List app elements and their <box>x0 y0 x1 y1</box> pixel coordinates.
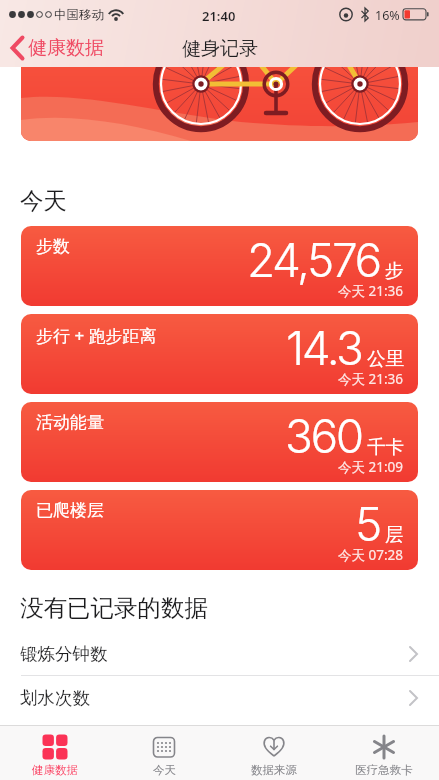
staticText: 今天 21:36 <box>338 282 404 300</box>
staticText: 14.3 <box>286 320 362 376</box>
button[interactable]: 数据来源 <box>219 726 329 780</box>
staticText: 24,576 <box>247 232 380 288</box>
staticText: 没有已记录的数据 <box>20 593 208 623</box>
staticText: 步行 + 跑步距离 <box>36 324 157 347</box>
button[interactable]: 活动能量 <box>21 402 418 482</box>
staticText: 16% <box>375 7 400 24</box>
staticText: 步数 <box>36 236 70 257</box>
staticText: 21:40 <box>202 7 236 25</box>
staticText: 步 <box>385 259 404 282</box>
button[interactable] <box>21 67 418 141</box>
staticText: 今天 07:28 <box>338 546 404 564</box>
staticText: 5 <box>355 496 380 552</box>
button[interactable]: 锻炼分钟数 <box>0 633 439 675</box>
staticText: 360 <box>285 408 362 464</box>
staticText: 医疗急救卡 <box>355 763 413 777</box>
button[interactable]: 健康数据 <box>0 726 109 780</box>
staticText: 中国移动 <box>54 7 104 23</box>
staticText: 锻炼分钟数 <box>20 643 108 665</box>
staticText: 数据来源 <box>251 763 297 777</box>
button[interactable]: 步行 + 跑步距离 <box>21 314 418 394</box>
button[interactable]: 已爬楼层 <box>21 490 418 570</box>
staticText: 今天 21:36 <box>338 370 404 388</box>
staticText: 今天 21:09 <box>338 458 404 476</box>
button[interactable]: 划水次数 <box>0 677 439 719</box>
staticText: 公里 <box>367 347 404 370</box>
button[interactable]: 今天 <box>109 726 219 780</box>
staticText: 健康数据 <box>32 763 78 777</box>
staticText: 千卡 <box>367 435 404 458</box>
staticText: 今天 <box>153 763 176 777</box>
button[interactable]: 健康数据 <box>8 32 118 64</box>
staticText: 健康数据 <box>28 36 104 60</box>
staticText: 今天 <box>20 186 67 216</box>
button[interactable]: 医疗急救卡 <box>329 726 439 780</box>
staticText: 活动能量 <box>36 412 104 433</box>
staticText: 健身记录 <box>182 37 258 61</box>
staticText: 划水次数 <box>20 687 90 709</box>
staticText: 层 <box>385 523 404 546</box>
button[interactable]: 步数 <box>21 226 418 306</box>
staticText: 已爬楼层 <box>36 500 104 521</box>
